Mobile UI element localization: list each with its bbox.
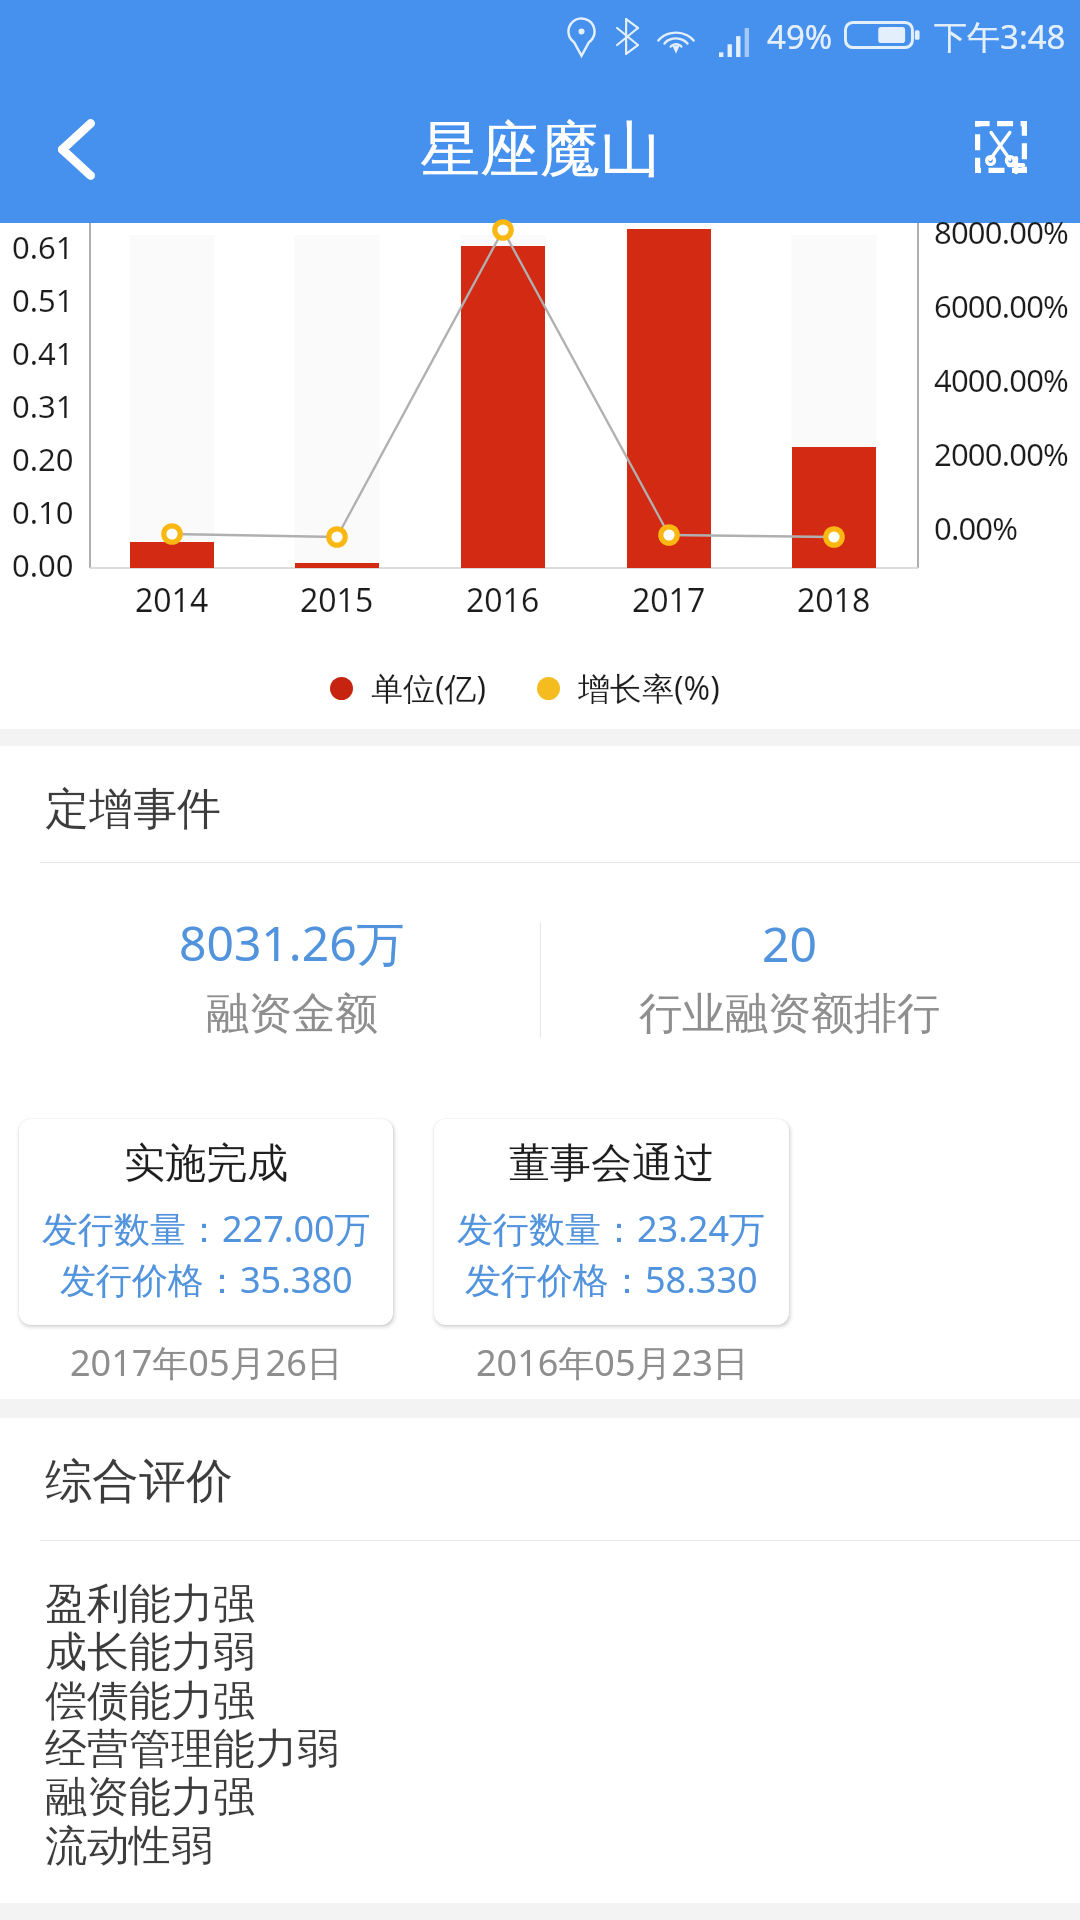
staticText: 0.31 xyxy=(12,385,74,427)
staticText: 融资能力强 xyxy=(45,1771,255,1824)
staticText: 星座魔山 xyxy=(420,112,660,188)
staticText: 发行价格：58.330 xyxy=(465,1255,758,1304)
staticText: 0.00 xyxy=(12,544,74,586)
staticText: 成长能力弱 xyxy=(45,1626,255,1679)
staticText: 2016年05月23日 xyxy=(476,1338,749,1387)
staticText: 实施完成 xyxy=(124,1138,288,1190)
staticText: 49% xyxy=(767,14,833,59)
staticText: 单位(亿) xyxy=(371,666,487,710)
staticText: 4000.00% xyxy=(934,359,1069,401)
button[interactable]: Screenshot xyxy=(947,93,1059,205)
staticText: 6000.00% xyxy=(934,285,1069,327)
staticText: 8031.26万 xyxy=(179,910,405,976)
staticText: 8000.00% xyxy=(934,211,1069,253)
staticText: 偿债能力强 xyxy=(45,1675,255,1728)
staticText: 盈利能力强 xyxy=(45,1578,255,1631)
staticText: 2000.00% xyxy=(934,433,1069,475)
staticText: 20 xyxy=(762,911,817,976)
staticText: 2014 xyxy=(135,578,209,622)
staticText: 2015 xyxy=(300,578,374,622)
button[interactable]: 实施完成 xyxy=(19,1119,393,1325)
staticText: 发行价格：35.380 xyxy=(60,1255,353,1304)
staticText: 经营管理能力弱 xyxy=(45,1723,339,1776)
staticText: 下午3:48 xyxy=(934,14,1066,59)
staticText: 定增事件 xyxy=(45,782,221,837)
staticText: 0.51 xyxy=(12,279,74,321)
staticText: 0.41 xyxy=(12,332,74,374)
staticText: 0.20 xyxy=(12,438,74,480)
staticText: 增长率(%) xyxy=(578,666,720,710)
staticText: 发行数量：227.00万 xyxy=(42,1204,371,1253)
staticText: 2017年05月26日 xyxy=(70,1338,343,1387)
button[interactable]: 董事会通过 xyxy=(434,1119,789,1325)
staticText: 0.10 xyxy=(12,491,74,533)
staticText: 董事会通过 xyxy=(509,1138,714,1190)
staticText: 行业融资额排行 xyxy=(639,987,940,1041)
staticText: 2017 xyxy=(632,578,706,622)
staticText: 流动性弱 xyxy=(45,1820,213,1873)
staticText: 发行数量：23.24万 xyxy=(457,1204,766,1253)
staticText: 融资金额 xyxy=(206,987,378,1041)
button[interactable]: Back xyxy=(8,93,140,205)
staticText: 综合评价 xyxy=(45,1452,233,1511)
staticText: 2016 xyxy=(466,578,540,622)
staticText: 0.61 xyxy=(12,226,74,268)
staticText: 2018 xyxy=(797,578,871,622)
staticText: 0.00% xyxy=(934,507,1018,549)
